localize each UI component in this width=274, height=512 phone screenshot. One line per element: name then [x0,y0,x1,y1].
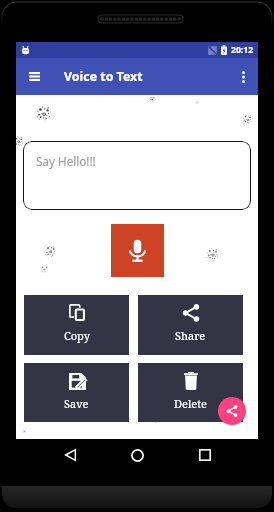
staticText: Save [64,396,89,411]
button[interactable]: Share [138,295,243,355]
button[interactable]: Share [218,397,246,425]
staticText: Copy [64,328,90,343]
staticText: Delete [174,396,207,411]
staticText: Voice to Text [64,68,143,85]
staticText: Say Hello!!! [36,153,96,169]
button[interactable]: Start voice input [111,224,164,277]
button[interactable]: Recent apps [190,440,220,470]
button[interactable]: Say Hello!!! [23,141,251,210]
button[interactable]: Home [122,440,152,470]
button[interactable]: More options [228,62,258,92]
button[interactable]: Back [55,440,85,470]
staticText: 20:12 [231,44,254,56]
button[interactable]: Copy [24,295,129,355]
button[interactable]: Save [24,363,129,422]
button[interactable]: Delete [138,363,243,422]
staticText: Share [175,328,206,343]
button[interactable]: Open navigation drawer [16,58,53,95]
